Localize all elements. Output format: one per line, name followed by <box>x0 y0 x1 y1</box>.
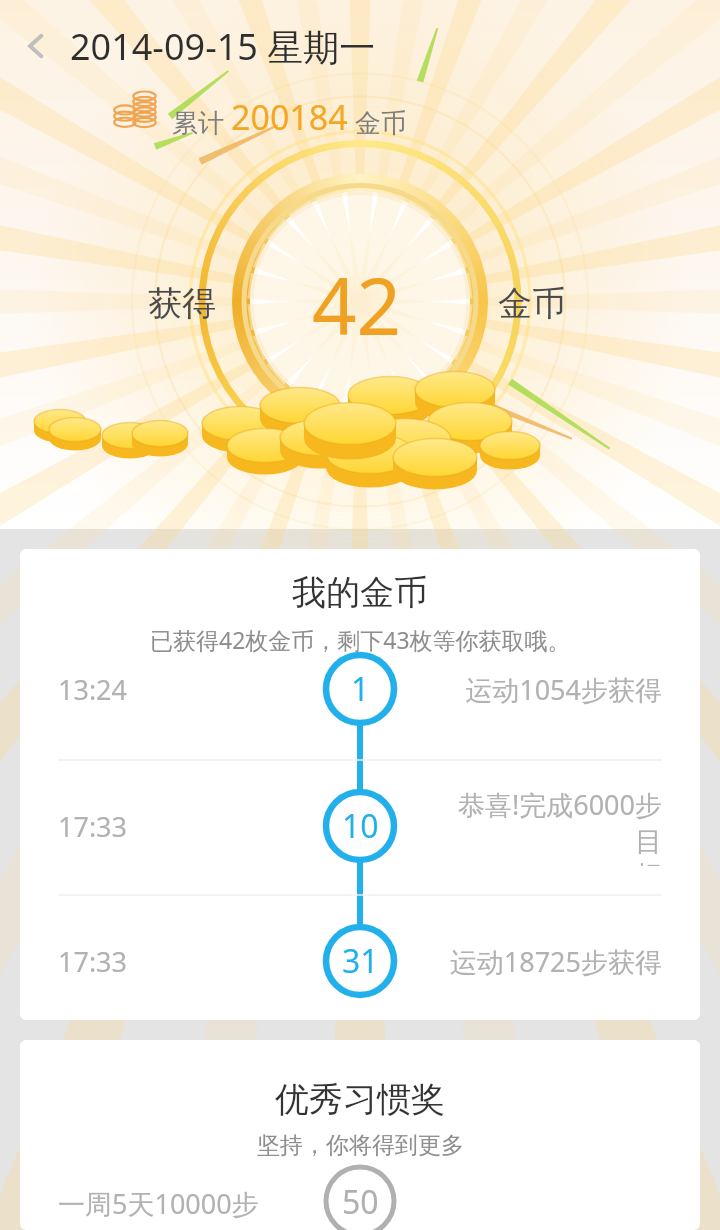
staticText: 运动18725步获得 <box>449 943 662 980</box>
button[interactable]: 17:33 <box>20 921 700 1001</box>
staticText: 累计 <box>172 104 231 140</box>
staticText: 标 <box>635 859 662 866</box>
staticText: 金币 <box>498 282 566 325</box>
staticText: 运动1054步获得 <box>465 671 662 708</box>
staticText: 获得 <box>148 282 216 325</box>
staticText: 已获得42枚金币，剩下43枚等你获取哦。 <box>150 624 571 655</box>
staticText: 2014-09-15 星期一 <box>70 22 376 71</box>
button[interactable]: 我的金币 <box>20 549 700 1020</box>
staticText: 10 <box>342 804 379 848</box>
staticText: 一周5天10000步 <box>58 1185 259 1222</box>
staticText: 50 <box>342 1180 379 1224</box>
staticText: 我的金币 <box>292 571 428 614</box>
button[interactable]: 13:24 <box>20 649 700 729</box>
staticText: 坚持，你将得到更多 <box>257 1131 464 1160</box>
staticText: 17:33 <box>58 943 128 980</box>
staticText: 200184 <box>231 94 348 140</box>
button[interactable]: 17:33 <box>20 786 700 866</box>
staticText: 1 <box>351 667 370 711</box>
staticText: 31 <box>342 939 379 983</box>
staticText: 42 <box>312 252 402 358</box>
button[interactable]: 优秀习惯奖 <box>20 1040 700 1230</box>
button[interactable]: Back <box>8 18 64 74</box>
staticText: 金币 <box>348 104 407 140</box>
staticText: 恭喜!完成6000步目 <box>432 786 662 859</box>
staticText: 13:24 <box>58 671 128 708</box>
staticText: 优秀习惯奖 <box>275 1078 445 1121</box>
staticText: 17:33 <box>58 808 128 845</box>
